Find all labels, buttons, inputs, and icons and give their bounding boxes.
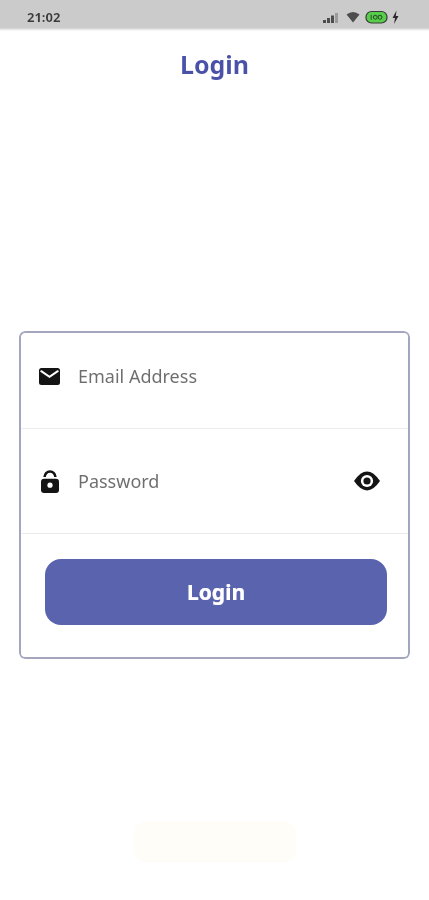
staticText: Password	[78, 469, 160, 494]
button[interactable]	[354, 472, 380, 490]
staticText: Login	[0, 47, 429, 81]
button[interactable]: Password	[19, 429, 410, 533]
staticText: Email Address	[78, 364, 198, 389]
staticText: 21:02	[27, 8, 61, 26]
staticText: Login	[187, 578, 246, 607]
button[interactable]: Login	[45, 559, 387, 625]
button[interactable]: Email Address	[19, 331, 410, 428]
